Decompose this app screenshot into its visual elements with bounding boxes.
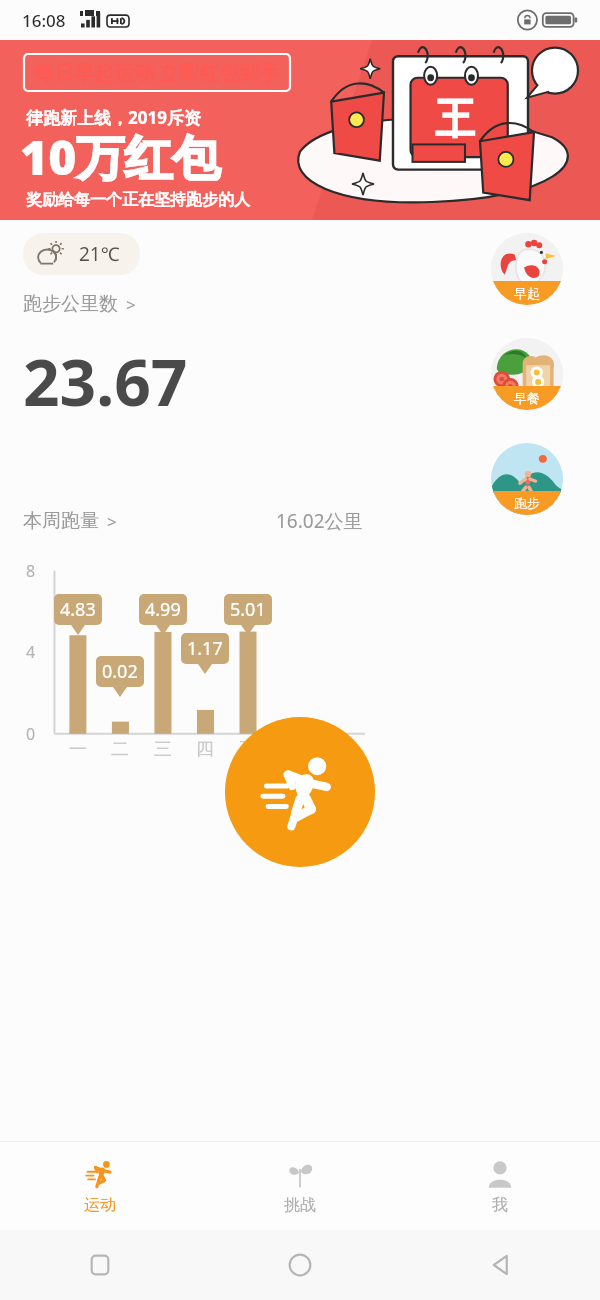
button[interactable]: Promotion banner <box>0 40 600 220</box>
staticText: 早起 <box>514 285 540 301</box>
staticText: 我 <box>492 1195 508 1215</box>
button[interactable]: Recents <box>0 1230 200 1300</box>
staticText: 4 <box>26 641 36 663</box>
staticText: 1.17 <box>187 636 223 661</box>
staticText: 0.02 <box>102 659 138 684</box>
button[interactable]: 早餐 <box>491 338 563 410</box>
button[interactable]: Back <box>400 1230 600 1300</box>
staticText: 律跑新上线，2019斥资 <box>26 106 201 129</box>
staticText: 16.02公里 <box>276 508 363 534</box>
staticText: 5.01 <box>230 597 266 622</box>
staticText: 跑步公里数 <box>23 292 118 316</box>
staticText: 0 <box>26 723 36 745</box>
staticText: 早餐 <box>514 390 540 406</box>
button[interactable]: 我 <box>400 1142 600 1230</box>
staticText: 16:08 <box>22 9 66 32</box>
button[interactable]: 21℃ <box>23 233 140 275</box>
button[interactable]: Home <box>200 1230 400 1300</box>
staticText: 挑战 <box>284 1195 316 1215</box>
staticText: 跑步 <box>514 495 540 511</box>
staticText: 四 <box>196 738 214 761</box>
button[interactable]: 跑步公里数 <box>23 292 136 316</box>
staticText: 21℃ <box>79 241 120 267</box>
staticText: 一 <box>69 738 87 761</box>
staticText: 每日早起运动 立即红包到手 <box>34 59 280 86</box>
staticText: 运动 <box>84 1195 116 1215</box>
staticText: > <box>126 293 136 316</box>
button[interactable]: 挑战 <box>200 1142 400 1230</box>
staticText: 8 <box>26 560 36 582</box>
staticText: 23.67 <box>23 338 188 425</box>
button[interactable]: 本周跑量 <box>23 509 117 533</box>
button[interactable]: 运动 <box>0 1142 200 1230</box>
button[interactable]: 跑步 <box>491 443 563 515</box>
button[interactable]: 早起 <box>491 233 563 305</box>
staticText: 奖励给每一个正在坚持跑步的人 <box>26 190 250 210</box>
staticText: 三 <box>154 738 172 761</box>
staticText: 10万红包 <box>20 124 221 190</box>
staticText: 4.99 <box>145 597 181 622</box>
staticText: 二 <box>111 738 129 761</box>
staticText: 本周跑量 <box>23 509 99 533</box>
staticText: > <box>107 510 117 533</box>
button[interactable]: Start run <box>225 717 375 867</box>
staticText: 五 <box>239 738 257 761</box>
staticText: 4.83 <box>60 597 96 622</box>
